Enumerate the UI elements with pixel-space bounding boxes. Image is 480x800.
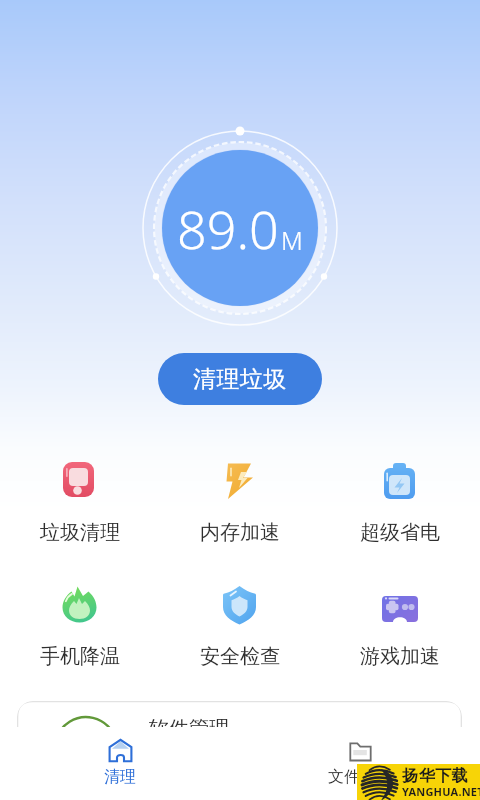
staticText: 清理 [104, 767, 136, 787]
staticText: YANGHUA.NET [402, 784, 480, 799]
button[interactable]: Storage usage 89.0 M [140, 128, 340, 328]
button[interactable]: 超级省电 [320, 461, 480, 545]
button[interactable]: 安全检查 [160, 585, 320, 669]
staticText: 内存加速 [200, 520, 280, 545]
button[interactable]: 内存加速 [160, 461, 320, 545]
staticText: 软件管理 [149, 716, 229, 741]
button[interactable]: 游戏加速 [320, 585, 480, 669]
button[interactable]: 手机降温 [0, 585, 160, 669]
staticText: 清理垃圾 [193, 365, 287, 394]
staticText: 扬华下载 [402, 766, 468, 786]
button[interactable]: 软件管理 [17, 701, 462, 800]
staticText: 安全检查 [200, 644, 280, 669]
staticText: 手机降温 [40, 644, 120, 669]
staticText: M [281, 223, 303, 257]
button[interactable]: 清理 [0, 727, 240, 800]
staticText: 垃圾清理 [40, 520, 120, 545]
staticText: 游戏加速 [360, 644, 440, 669]
staticText: 89.0 [177, 193, 279, 264]
button[interactable]: 文件管理 [240, 727, 480, 800]
staticText: 超级省电 [360, 520, 440, 545]
button[interactable]: 清理垃圾 [158, 353, 322, 405]
button[interactable]: 垃圾清理 [0, 461, 160, 545]
staticText: 文件管理 [328, 767, 392, 787]
